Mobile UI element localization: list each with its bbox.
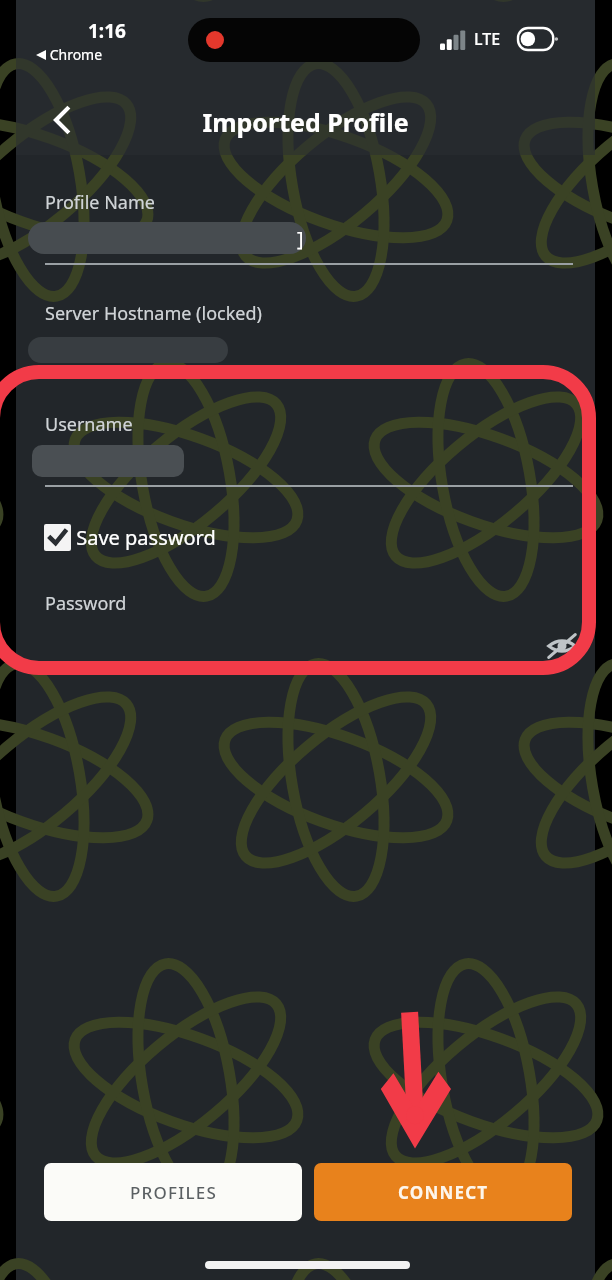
staticText: LTE: [474, 28, 501, 50]
button[interactable]: Back: [34, 92, 90, 148]
staticText: Chrome: [46, 45, 103, 64]
staticText: Profile Name: [45, 190, 155, 215]
staticText: 1:16: [88, 18, 126, 44]
staticText: Password: [45, 591, 127, 616]
button[interactable]: Show password: [536, 620, 588, 672]
button[interactable]: Save password: [42, 522, 218, 553]
staticText: Server Hostname (locked): [45, 301, 262, 326]
staticText: CONNECT: [398, 1181, 489, 1204]
staticText: Username: [45, 412, 133, 437]
staticText: PROFILES: [130, 1181, 217, 1204]
button[interactable]: CONNECT: [314, 1163, 572, 1221]
button[interactable]: PROFILES: [44, 1163, 302, 1221]
staticText: Imported Profile: [16, 105, 595, 139]
staticText: ]: [297, 225, 304, 252]
staticText: Save password: [71, 524, 216, 551]
